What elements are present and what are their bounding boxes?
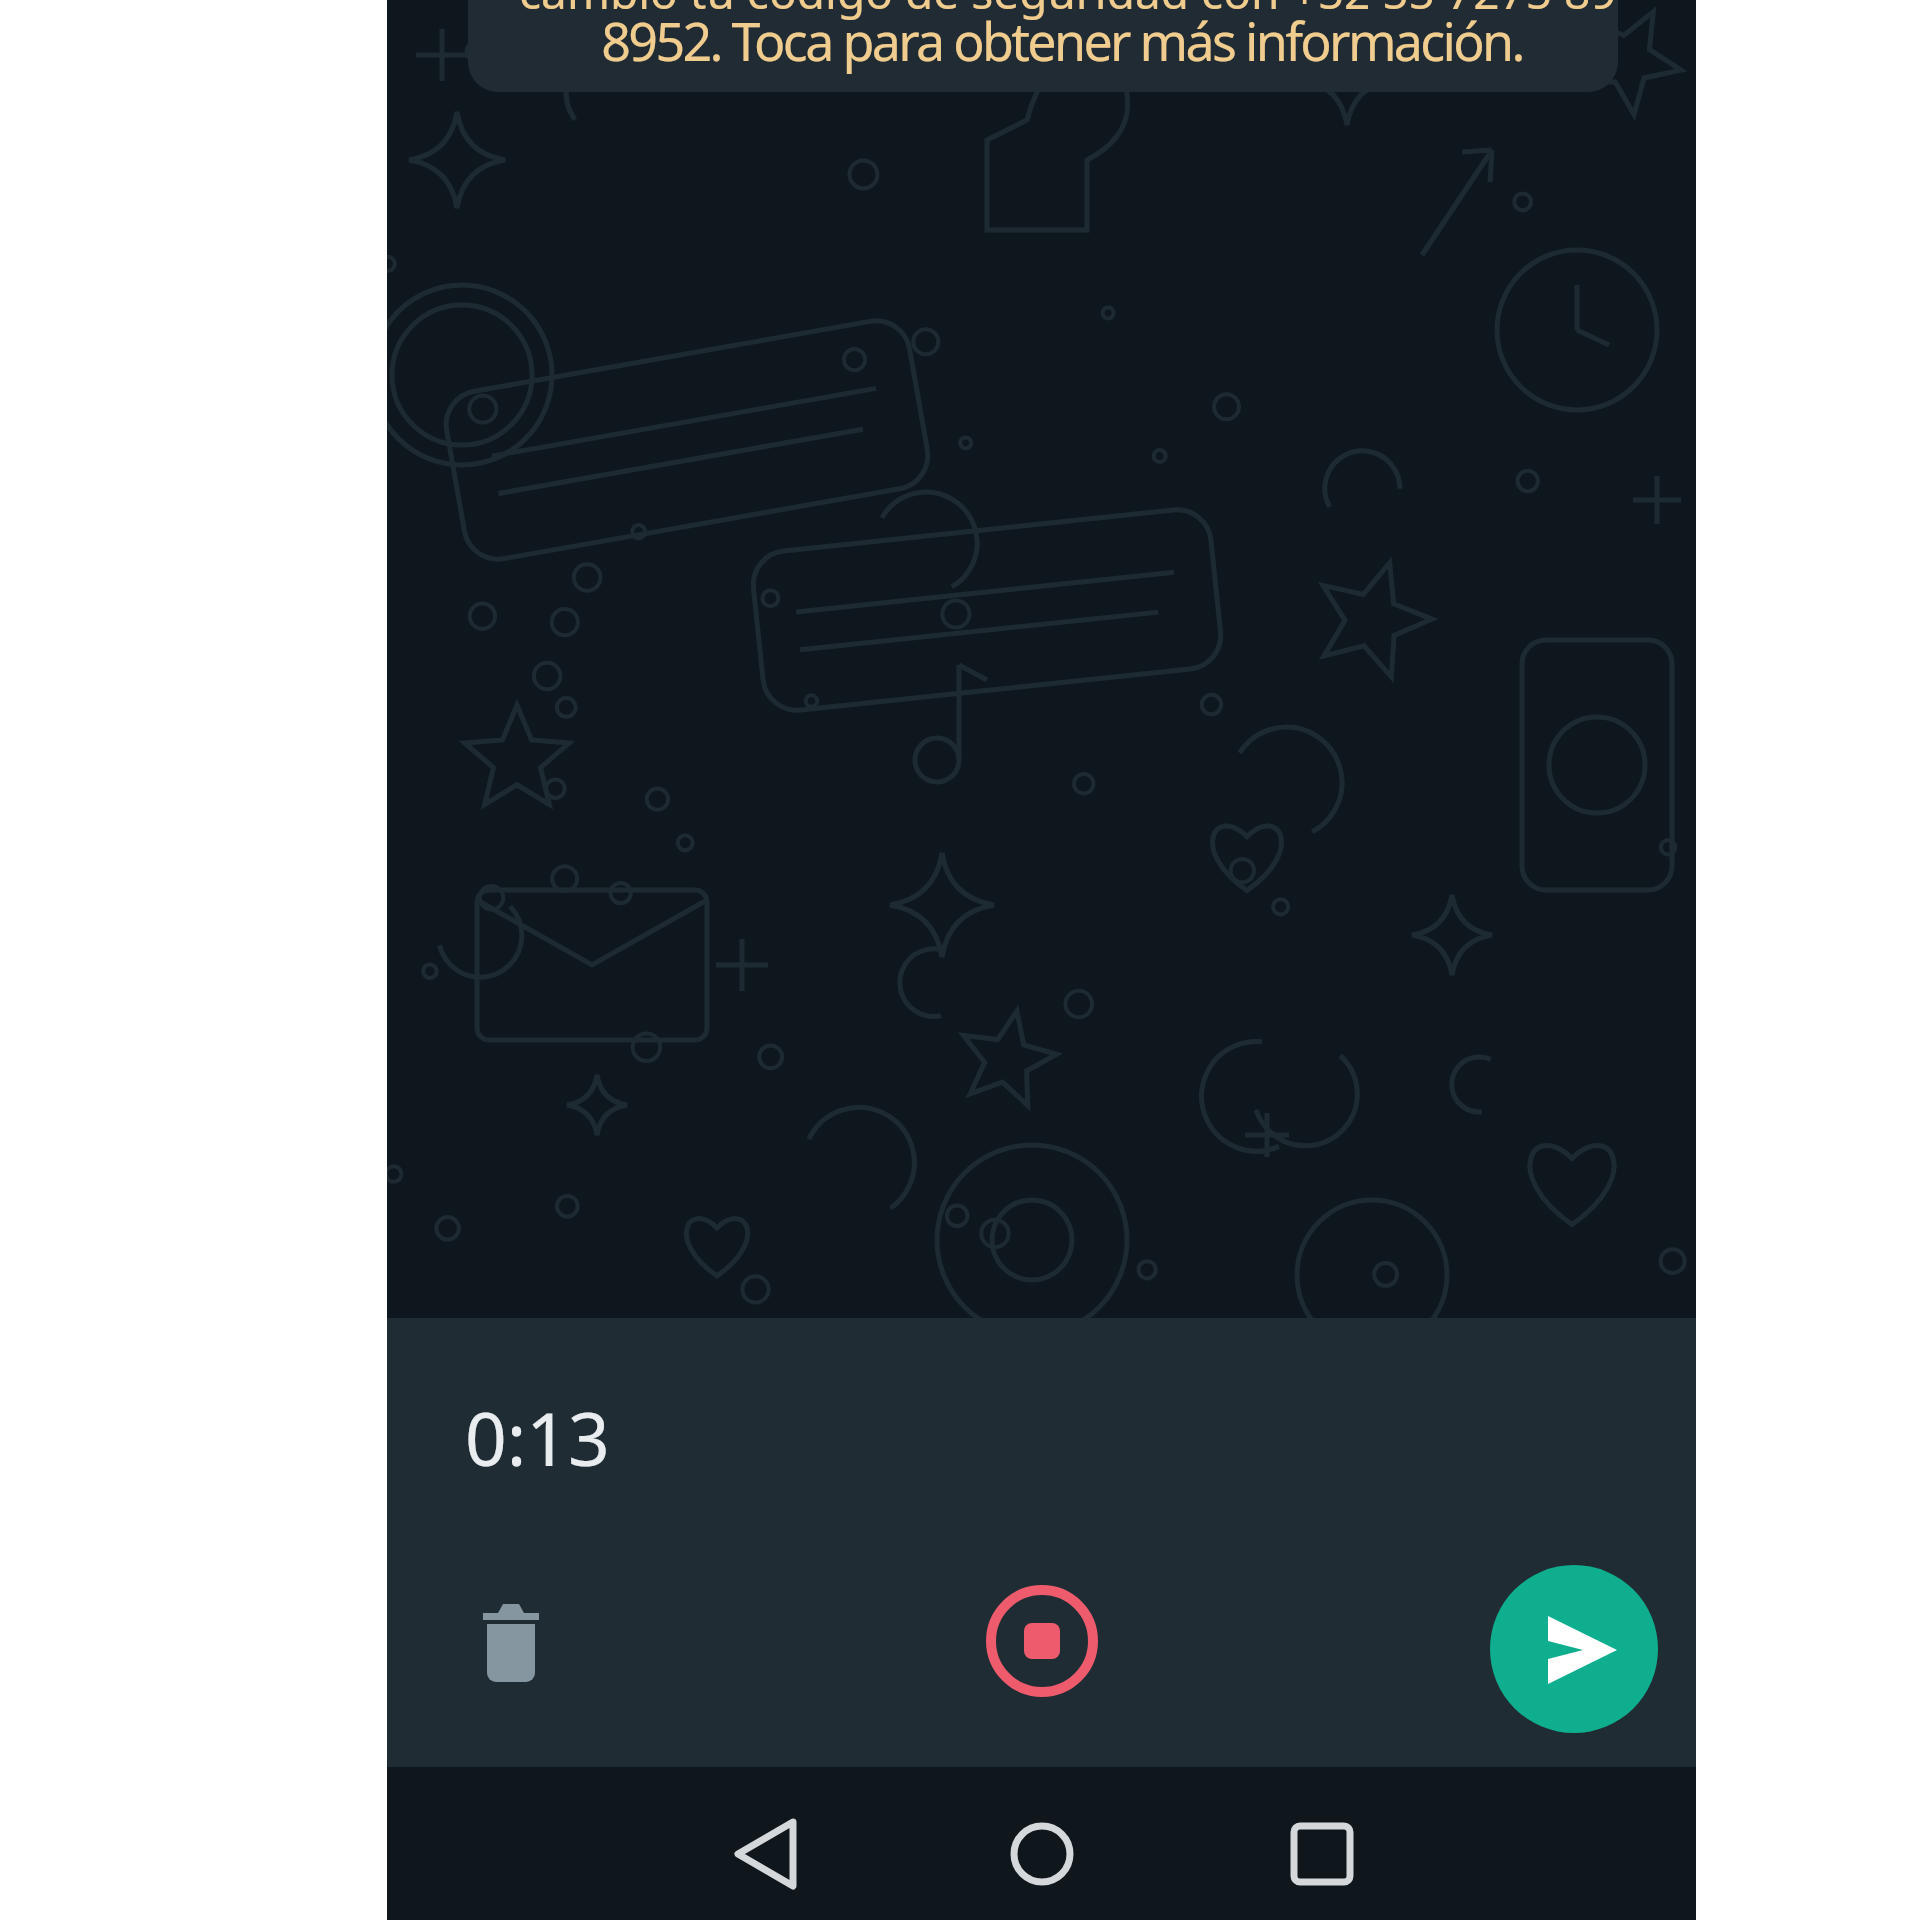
staticText: 8952. Toca para obtener más información. [487,5,1618,85]
staticText: cambió tu código de seguridad con +52 55… [506,0,1618,40]
staticText: 0:13 [465,1388,610,1487]
